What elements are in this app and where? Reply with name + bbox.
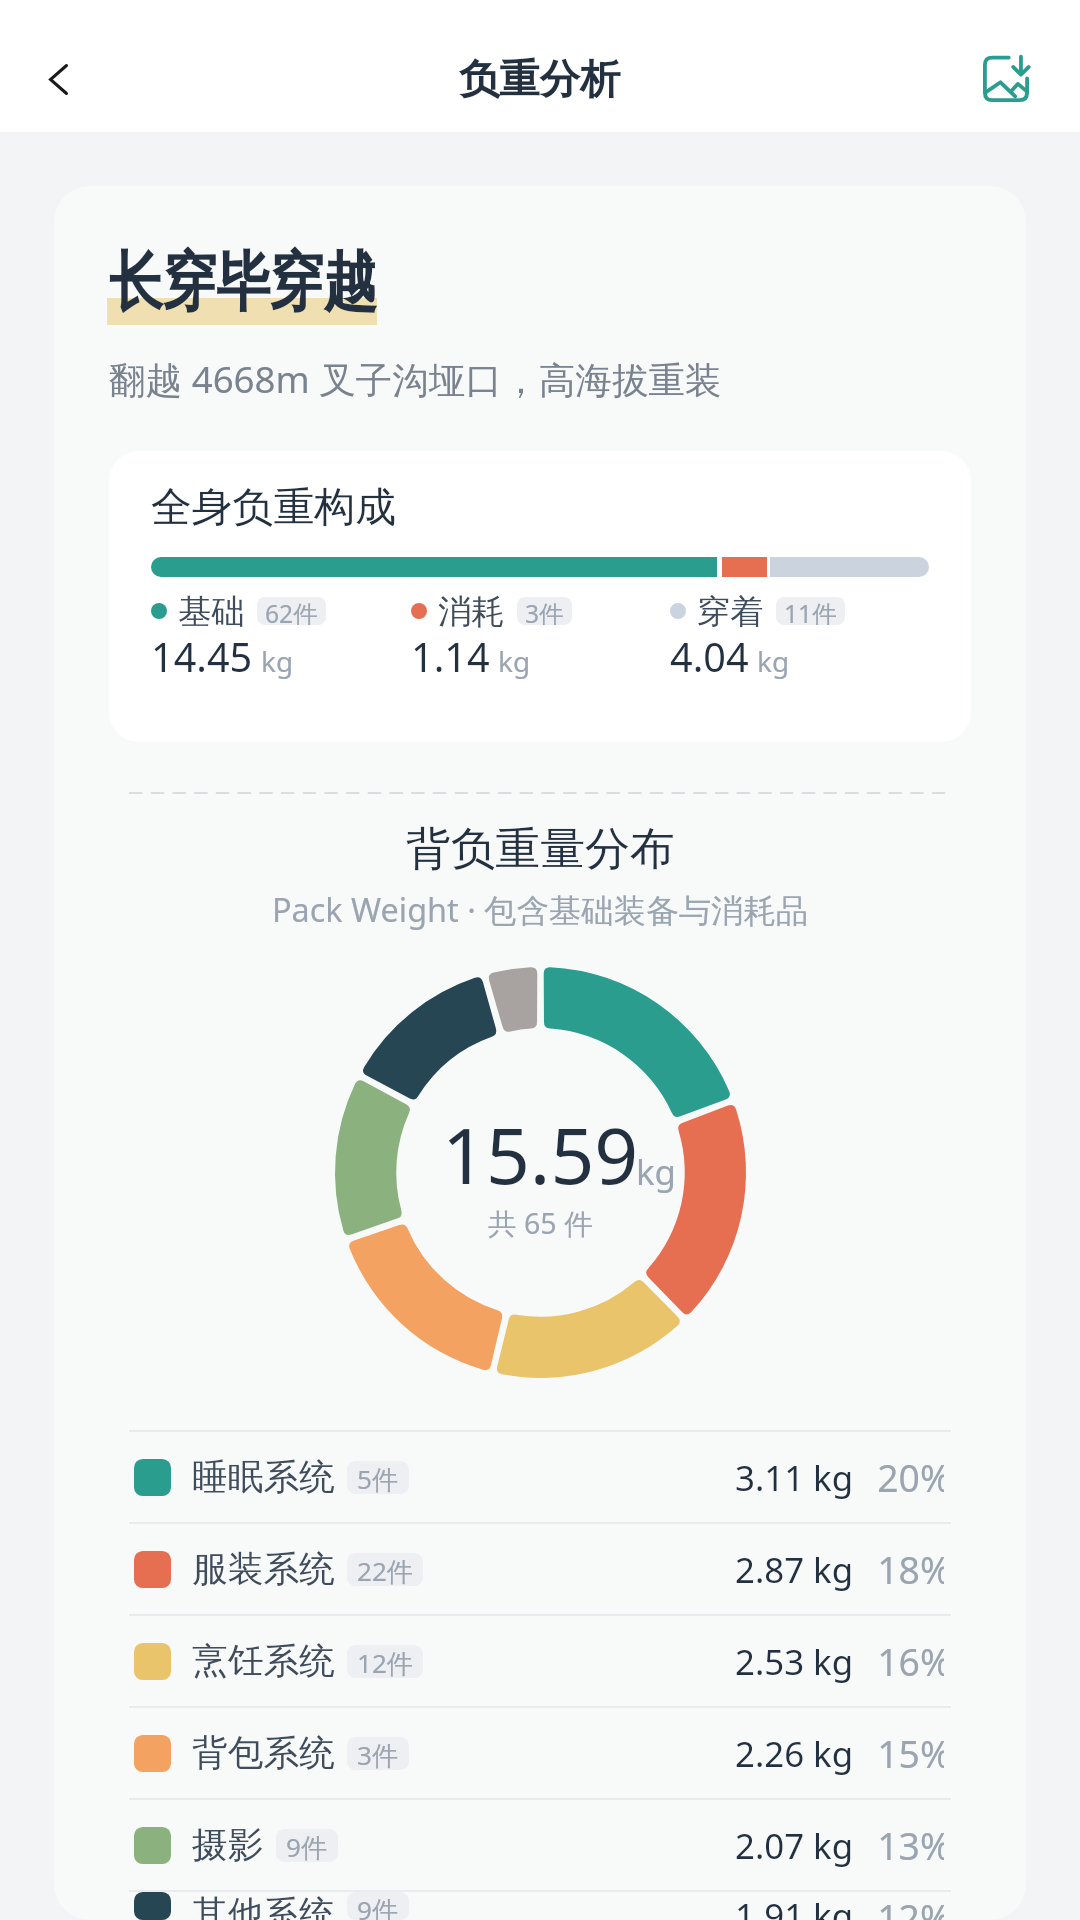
staticText: 背负重量分布 [406,821,675,877]
button[interactable]: 其他系统 [129,1892,951,1920]
staticText: 2.87 kg [735,1546,854,1593]
staticText: Pack Weight · 包含基础装备与消耗品 [272,887,809,931]
button[interactable]: 摄影 [129,1800,951,1890]
staticText: 共 65 件 [488,1204,593,1243]
staticText: 2.53 kg [735,1638,854,1685]
staticText: 16% [877,1636,944,1687]
button[interactable]: 烹饪系统 [129,1616,951,1706]
staticText: 62件 [265,597,318,625]
staticText: 2.26 kg [735,1730,854,1777]
button[interactable]: 背包系统 [129,1708,951,1798]
staticText: 基础 [178,591,245,630]
staticText: 1.14 [411,630,490,683]
staticText: 11件 [784,597,837,625]
staticText: 14.45 [151,630,253,683]
staticText: 5件 [357,1461,399,1494]
button[interactable]: 服装系统 [129,1524,951,1614]
staticText: 摄影 [192,1823,264,1868]
staticText: 烹饪系统 [192,1639,335,1684]
button[interactable]: Save image [952,24,1060,132]
staticText: 3.11 kg [735,1454,854,1501]
staticText: 负重分析 [459,54,621,105]
staticText: 13% [877,1820,944,1871]
staticText: 15% [877,1728,944,1779]
staticText: 9件 [286,1829,328,1862]
staticText: 睡眠系统 [192,1455,335,1500]
staticText: 22件 [357,1553,413,1586]
button[interactable]: Back [4,25,112,133]
staticText: 3件 [357,1737,399,1770]
staticText: 背包系统 [192,1731,335,1776]
staticText: 12% [877,1892,944,1920]
staticText: kg [261,642,294,680]
staticText: 15.59 [442,1102,639,1207]
button[interactable]: 睡眠系统 [129,1432,951,1522]
staticText: kg [498,642,531,680]
staticText: 9件 [357,1892,399,1920]
staticText: 穿着 [697,591,764,630]
staticText: 18% [877,1544,944,1595]
staticText: 1.91 kg [735,1892,854,1920]
staticText: 2.07 kg [735,1822,854,1869]
staticText: 20% [877,1452,944,1503]
staticText: 消耗 [438,591,505,630]
staticText: 4.04 [670,630,749,683]
staticText: 3件 [525,597,564,625]
staticText: 翻越 4668m 叉子沟垭口，高海拔重装 [109,354,722,404]
staticText: 12件 [357,1645,413,1678]
staticText: 服装系统 [192,1547,335,1592]
staticText: 其他系统 [192,1892,335,1920]
staticText: 全身负重构成 [151,482,396,533]
staticText: kg [757,642,790,680]
staticText: 长穿毕穿越 [109,242,377,322]
staticText: kg [636,1148,676,1195]
